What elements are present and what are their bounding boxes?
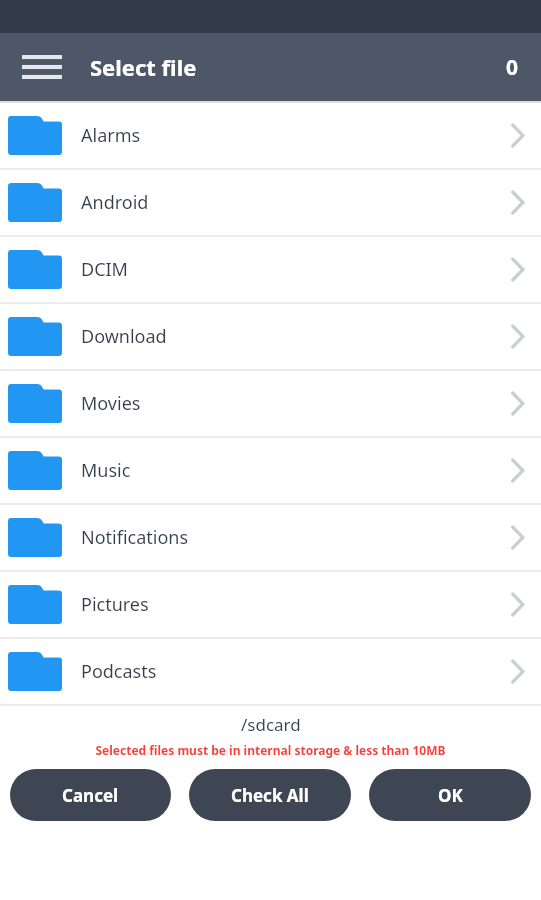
staticText: Movies <box>81 391 510 416</box>
button[interactable]: DCIM <box>0 237 541 302</box>
button[interactable]: Check All <box>189 769 351 821</box>
button[interactable]: Android <box>0 170 541 235</box>
staticText: Pictures <box>81 592 510 617</box>
staticText: Alarms <box>81 123 510 148</box>
staticText: Selected files must be in internal stora… <box>95 742 446 758</box>
staticText: Music <box>81 458 510 483</box>
button[interactable]: Cancel <box>10 769 171 821</box>
staticText: OK <box>438 784 463 807</box>
button[interactable]: Notifications <box>0 505 541 570</box>
button[interactable]: Pictures <box>0 572 541 637</box>
staticText: 0 <box>506 53 519 82</box>
staticText: Check All <box>231 784 309 807</box>
button[interactable]: Music <box>0 438 541 503</box>
button[interactable]: Podcasts <box>0 639 541 704</box>
staticText: Notifications <box>81 525 510 550</box>
staticText: Podcasts <box>81 659 510 684</box>
button[interactable]: Alarms <box>0 103 541 168</box>
button[interactable]: Download <box>0 304 541 369</box>
button[interactable]: Movies <box>0 371 541 436</box>
staticText: Cancel <box>62 784 119 807</box>
staticText: DCIM <box>81 257 510 282</box>
button[interactable]: OK <box>369 769 531 821</box>
staticText: Android <box>81 190 510 215</box>
staticText: Select file <box>90 52 197 82</box>
staticText: Download <box>81 324 510 349</box>
staticText: /sdcard <box>241 713 301 736</box>
button[interactable]: Menu <box>22 46 64 88</box>
